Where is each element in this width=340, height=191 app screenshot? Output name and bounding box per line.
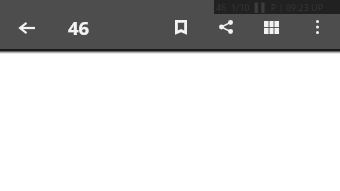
button[interactable]: More options <box>296 8 338 46</box>
button[interactable]: Bookmark <box>160 8 202 46</box>
button[interactable]: Grid view <box>250 8 292 46</box>
button[interactable]: Navigate up <box>3 4 50 52</box>
button[interactable]: Share <box>205 8 247 46</box>
staticText: 46 <box>68 15 90 40</box>
staticText: 46 1/10 ▌▌ P | 09:23 UP <box>216 1 324 13</box>
